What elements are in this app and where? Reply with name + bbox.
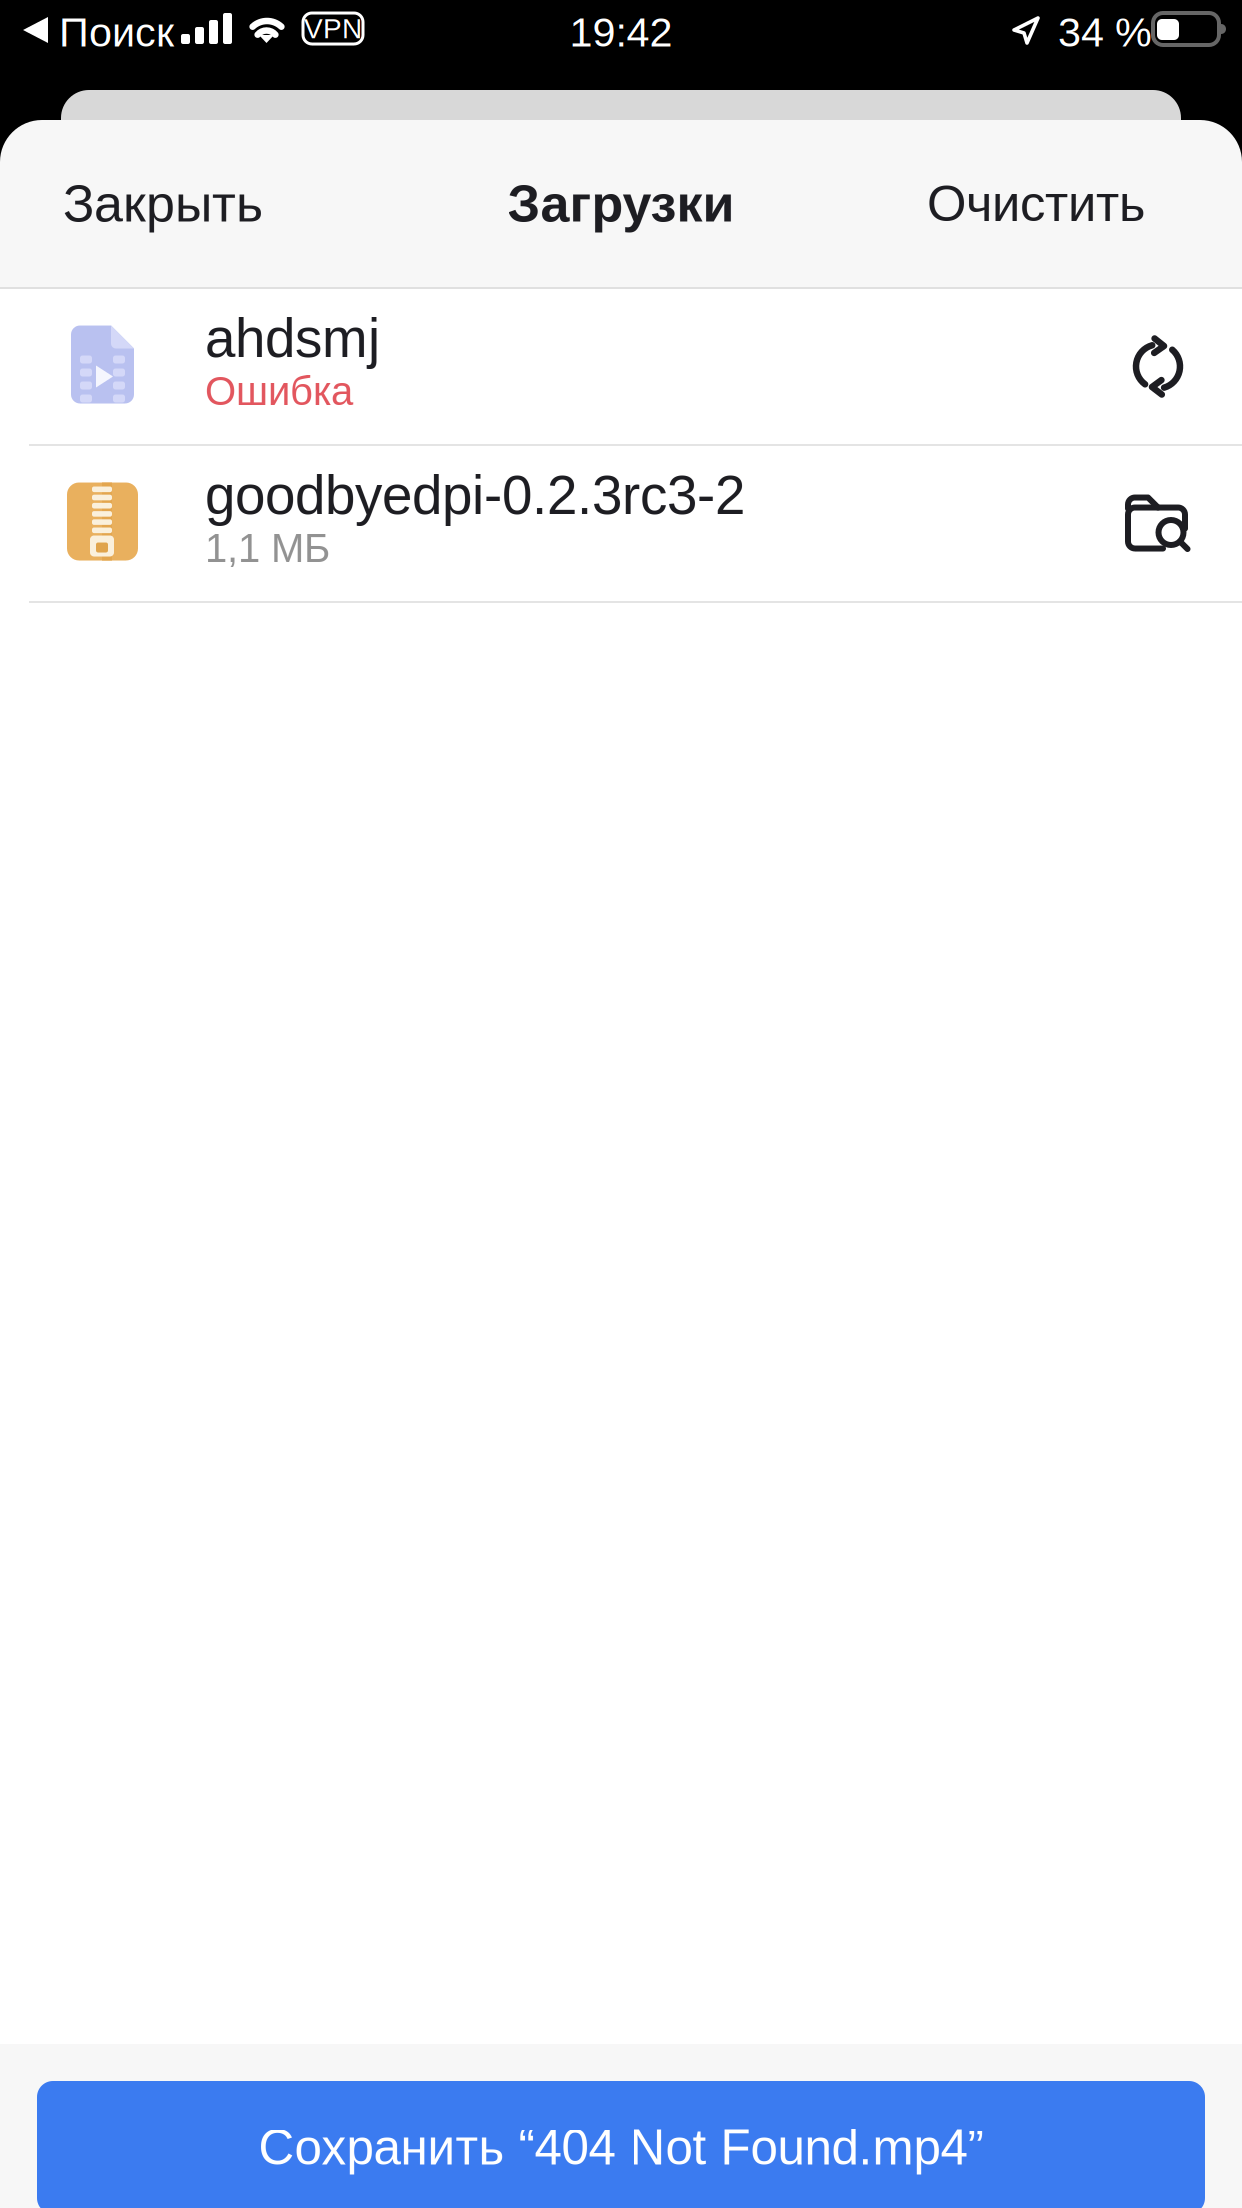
staticText: Сохранить “404 Not Found.mp4” — [258, 2120, 983, 2175]
staticText: Ошибка — [205, 369, 353, 413]
staticText: Поиск — [59, 9, 174, 55]
button[interactable]: Повторить загрузку — [1102, 289, 1214, 444]
staticText: 19:42 — [569, 9, 672, 55]
staticText: ahdsmj — [205, 308, 380, 369]
button[interactable]: Очистить — [927, 153, 1145, 254]
staticText: Загрузки — [507, 174, 734, 233]
staticText: VPN — [304, 13, 362, 44]
staticText: goodbyedpi-0.2.3rc3-2 — [205, 465, 745, 526]
button[interactable]: Закрыть — [63, 152, 263, 255]
button[interactable]: Сохранить “404 Not Found.mp4” — [37, 2081, 1205, 2208]
staticText: 1,1 МБ — [205, 526, 330, 570]
staticText: Закрыть — [63, 174, 263, 233]
staticText: Очистить — [927, 175, 1145, 232]
staticText: 34 % — [1058, 9, 1152, 55]
button[interactable]: Показать в папке — [1102, 446, 1214, 601]
